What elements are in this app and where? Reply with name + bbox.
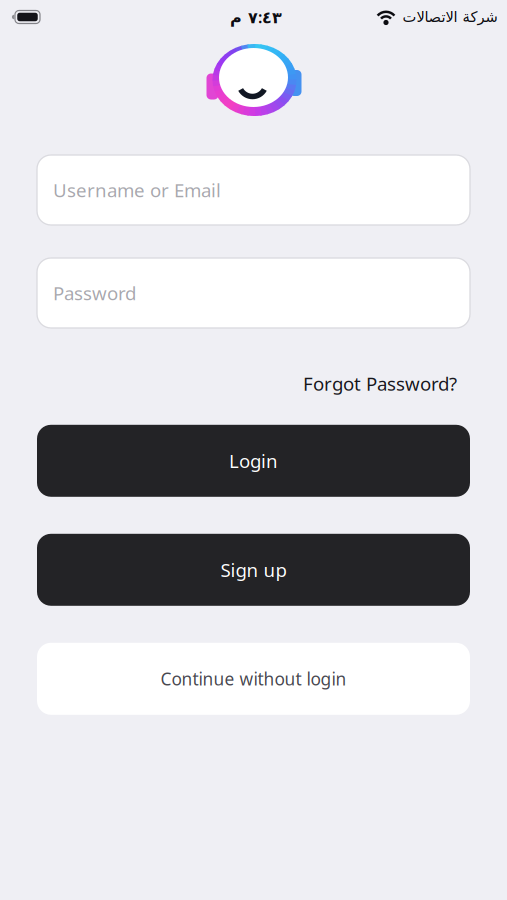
button[interactable]: Password — [37, 258, 470, 328]
button[interactable]: Continue without login — [37, 643, 470, 715]
staticText: ٧:٤٣ م — [229, 6, 281, 28]
staticText: Login — [229, 448, 278, 473]
staticText: Forgot Password? — [303, 371, 457, 396]
staticText: Username or Email — [53, 178, 221, 202]
button[interactable]: Username or Email — [37, 155, 470, 225]
button[interactable]: Login — [37, 425, 470, 497]
button[interactable]: Forgot Password? — [303, 371, 457, 396]
staticText: Password — [53, 281, 136, 305]
button[interactable]: Sign up — [37, 534, 470, 606]
staticText: شركة الاتصالات — [402, 9, 497, 25]
staticText: Sign up — [220, 557, 286, 582]
staticText: Continue without login — [160, 667, 346, 690]
